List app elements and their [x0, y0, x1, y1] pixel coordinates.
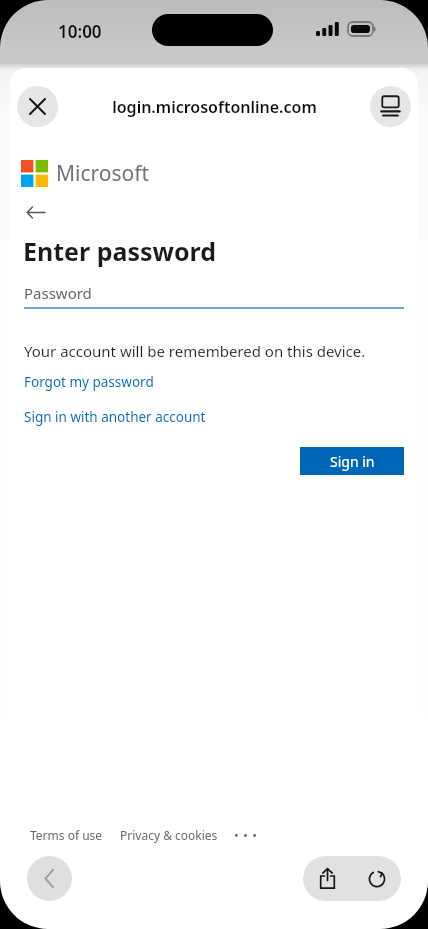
button[interactable]: Close: [17, 86, 58, 127]
staticText: Forgot my password: [24, 373, 154, 391]
button[interactable]: More: [232, 827, 258, 843]
button[interactable]: Share: [303, 856, 352, 901]
staticText: login.microsoftonline.com: [112, 96, 317, 118]
button[interactable]: Terms of use: [30, 827, 103, 843]
staticText: Sign in: [330, 452, 375, 471]
button[interactable]: Sign in with another account: [24, 408, 206, 426]
staticText: Microsoft: [56, 159, 150, 188]
staticText: Password: [24, 283, 92, 303]
button[interactable]: Sign in: [300, 447, 404, 475]
staticText: Sign in with another account: [24, 408, 206, 426]
button[interactable]: Forgot my password: [24, 373, 154, 391]
button[interactable]: Back: [18, 198, 52, 226]
staticText: Terms of use: [30, 827, 103, 843]
staticText: Your account will be remembered on this …: [24, 341, 366, 361]
button[interactable]: Privacy & cookies: [120, 827, 218, 843]
staticText: Enter password: [23, 234, 217, 268]
staticText: Privacy & cookies: [120, 827, 218, 843]
button[interactable]: Page settings: [370, 86, 411, 127]
staticText: 10:00: [58, 20, 102, 43]
button[interactable]: Back: [27, 856, 72, 901]
button[interactable]: Reload: [352, 856, 401, 901]
